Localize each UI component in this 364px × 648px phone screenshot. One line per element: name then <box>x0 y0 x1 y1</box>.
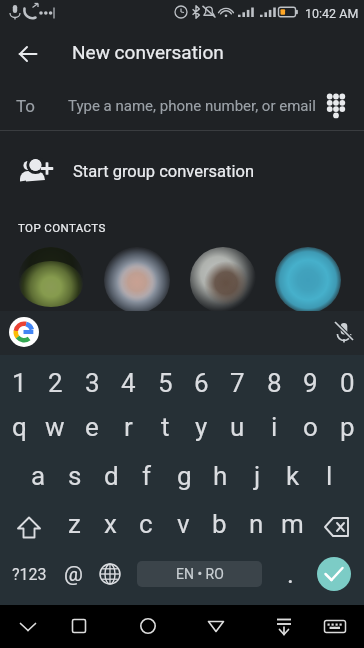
staticText: New conversation <box>72 41 224 63</box>
staticText: m <box>281 509 304 539</box>
staticText: d <box>104 461 119 491</box>
staticText: 10:42 AM <box>305 6 359 21</box>
button[interactable]: j <box>239 454 275 498</box>
staticText: 0 <box>340 368 355 398</box>
button[interactable]: EN • RO <box>137 561 262 587</box>
button[interactable]: l <box>311 454 347 498</box>
staticText: g <box>177 461 192 491</box>
staticText: 3 <box>85 368 100 398</box>
staticText: n <box>249 509 264 539</box>
button[interactable]: c <box>128 502 164 546</box>
button[interactable]: a <box>20 454 56 498</box>
staticText: s <box>68 461 82 491</box>
staticText: @ <box>64 562 83 587</box>
button[interactable]: 6 <box>183 361 219 405</box>
staticText: Type a name, phone number, or email <box>68 97 316 115</box>
button[interactable]: . <box>272 552 308 596</box>
staticText: u <box>230 412 245 442</box>
staticText: h <box>213 461 228 491</box>
button[interactable]: 7 <box>219 361 255 405</box>
staticText: 8 <box>267 368 282 398</box>
staticText: . <box>287 559 294 589</box>
button[interactable]: n <box>238 502 274 546</box>
staticText: c <box>139 509 153 539</box>
staticText: q <box>12 412 27 442</box>
staticText: b <box>212 509 227 539</box>
button[interactable]: o <box>292 405 328 449</box>
button[interactable]: Google search <box>6 314 41 349</box>
staticText: ?123 <box>12 565 47 584</box>
staticText: 1 <box>12 368 27 398</box>
button[interactable]: Back <box>194 605 238 648</box>
button[interactable]: @ <box>55 552 91 596</box>
button[interactable]: 2 <box>37 361 73 405</box>
button[interactable]: i <box>256 405 292 449</box>
button[interactable]: Voice input disabled <box>327 316 361 350</box>
staticText: t <box>161 412 170 442</box>
button[interactable]: f <box>129 454 165 498</box>
button[interactable]: d <box>93 454 129 498</box>
button[interactable]: Contact <box>104 247 170 313</box>
button[interactable]: Recent apps <box>57 605 101 648</box>
button[interactable]: 3 <box>74 361 110 405</box>
staticText: EN • RO <box>176 566 224 582</box>
button[interactable]: Home <box>126 605 170 648</box>
button[interactable]: b <box>201 502 237 546</box>
button[interactable]: m <box>274 502 310 546</box>
button[interactable]: Shift <box>0 506 58 550</box>
button[interactable]: 8 <box>256 361 292 405</box>
button[interactable]: h <box>202 454 238 498</box>
staticText: w <box>45 412 65 442</box>
staticText: 2 <box>48 368 63 398</box>
staticText: 6 <box>194 368 209 398</box>
button[interactable]: Contact <box>275 247 341 313</box>
staticText: f <box>142 461 152 491</box>
staticText: l <box>326 461 333 491</box>
button[interactable]: Contact <box>18 247 84 313</box>
button[interactable]: k <box>275 454 311 498</box>
button[interactable]: s <box>57 454 93 498</box>
button[interactable]: t <box>147 405 183 449</box>
button[interactable]: Start group conversation <box>0 140 364 202</box>
staticText: a <box>31 461 46 491</box>
button[interactable]: 0 <box>329 361 364 405</box>
button[interactable]: 1 <box>1 361 37 405</box>
button[interactable]: Hide keyboard <box>6 605 50 648</box>
button[interactable]: w <box>37 405 73 449</box>
button[interactable]: g <box>166 454 202 498</box>
button[interactable]: r <box>110 405 146 449</box>
staticText: j <box>254 461 261 491</box>
button[interactable]: 9 <box>292 361 328 405</box>
button[interactable]: u <box>219 405 255 449</box>
staticText: k <box>286 461 300 491</box>
staticText: o <box>303 412 318 442</box>
staticText: 9 <box>303 368 318 398</box>
button[interactable]: Navigate up <box>8 34 48 74</box>
button[interactable]: v <box>165 502 201 546</box>
button[interactable]: Switch keyboard <box>313 605 357 648</box>
button[interactable]: Contact <box>190 247 256 313</box>
staticText: z <box>68 509 81 539</box>
staticText: r <box>124 412 133 442</box>
button[interactable]: Download <box>262 605 306 648</box>
staticText: Start group conversation <box>73 162 255 181</box>
button[interactable]: p <box>329 405 364 449</box>
staticText: y <box>195 412 208 442</box>
button[interactable]: x <box>92 502 128 546</box>
button[interactable]: 4 <box>110 361 146 405</box>
button[interactable]: Change keyboard language <box>92 552 128 596</box>
button[interactable]: Backspace <box>309 505 364 549</box>
button[interactable]: q <box>1 405 37 449</box>
button[interactable]: 5 <box>147 361 183 405</box>
staticText: 4 <box>121 368 136 398</box>
staticText: v <box>177 509 190 539</box>
staticText: To <box>16 96 36 116</box>
staticText: p <box>340 412 355 442</box>
button[interactable]: y <box>183 405 219 449</box>
staticText: i <box>271 412 278 442</box>
button[interactable]: z <box>56 502 92 546</box>
button[interactable]: e <box>74 405 110 449</box>
button[interactable]: Dialpad <box>316 86 356 126</box>
button[interactable]: ?123 <box>0 552 58 596</box>
button[interactable]: Enter <box>317 557 351 591</box>
